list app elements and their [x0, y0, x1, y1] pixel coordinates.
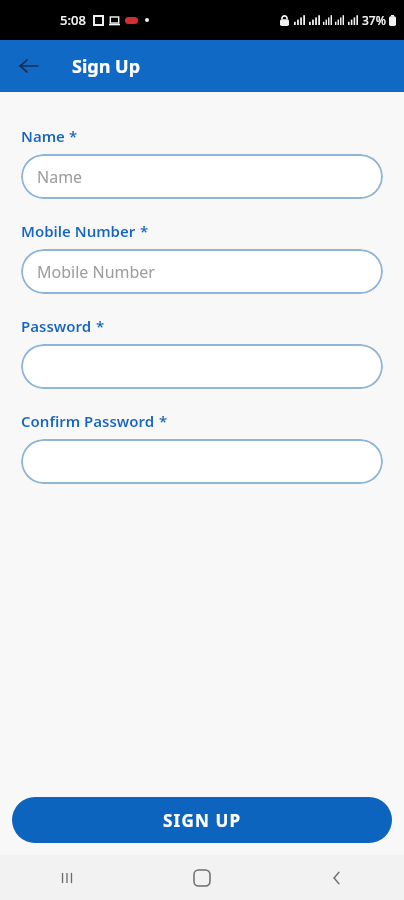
staticText: * — [96, 316, 105, 336]
button[interactable]: Recent apps — [0, 855, 134, 900]
staticText: * — [69, 126, 78, 146]
button[interactable]: Name — [21, 154, 383, 199]
staticText: Sign Up — [72, 54, 141, 79]
staticText: Mobile Number — [37, 261, 155, 283]
staticText: Name — [37, 166, 83, 188]
button[interactable]: Back — [10, 47, 48, 85]
button[interactable]: SIGN UP — [12, 797, 392, 843]
staticText: Confirm Password — [21, 411, 155, 431]
staticText: Password — [21, 316, 92, 336]
button[interactable]: Back — [269, 855, 404, 900]
staticText: 37% — [362, 12, 386, 28]
staticText: * — [140, 221, 149, 241]
button[interactable] — [21, 344, 383, 389]
button[interactable]: Home — [134, 855, 269, 900]
button[interactable] — [21, 439, 383, 484]
staticText: SIGN UP — [163, 809, 242, 832]
button[interactable]: Mobile Number — [21, 249, 383, 294]
staticText: * — [159, 411, 168, 431]
staticText: Mobile Number — [21, 221, 136, 241]
staticText: Name — [21, 126, 65, 146]
staticText: 5:08 — [60, 11, 86, 29]
